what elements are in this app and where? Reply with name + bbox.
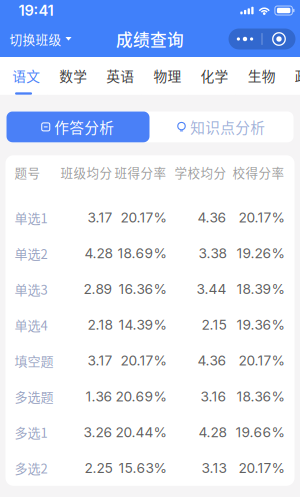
staticText: 20.17%	[238, 352, 284, 369]
button[interactable]: More	[228, 28, 261, 49]
staticText: 16.36%	[118, 281, 166, 297]
staticText: 20.69%	[115, 388, 166, 405]
staticText: 19:41	[18, 2, 53, 19]
staticText: 成绩查询	[116, 27, 184, 51]
staticText: 20.17%	[238, 460, 284, 476]
staticText: 3.16	[200, 388, 226, 405]
staticText: 多选题	[14, 387, 53, 406]
staticText: 多选2	[14, 458, 47, 477]
staticText: 14.39%	[118, 317, 166, 333]
staticText: 作答分析	[54, 116, 114, 137]
staticText: 18.39%	[236, 281, 284, 297]
staticText: 18.36%	[236, 388, 284, 405]
staticText: 3.17	[87, 352, 112, 369]
staticText: 单选3	[14, 280, 47, 298]
staticText: 4.28	[198, 424, 226, 440]
staticText: 切换班级	[9, 30, 61, 48]
staticText: 语文	[12, 66, 40, 85]
button[interactable]: 单选1	[5, 200, 294, 235]
staticText: 20.17%	[120, 209, 166, 226]
staticText: 2.25	[84, 460, 112, 476]
staticText: 2.15	[201, 317, 226, 333]
button[interactable]: 数学	[47, 57, 94, 94]
button[interactable]: 多选题	[5, 378, 294, 414]
staticText: 4.36	[197, 352, 226, 369]
button[interactable]: 单选4	[5, 307, 294, 343]
staticText: 题号	[14, 163, 40, 181]
staticText: 3.17	[87, 209, 112, 226]
button[interactable]: 生物	[235, 57, 283, 94]
staticText: 2.89	[83, 281, 112, 297]
staticText: 4.28	[84, 245, 112, 262]
staticText: 1.36	[85, 388, 112, 405]
button[interactable]: 政治	[283, 57, 300, 94]
staticText: 校得分率	[232, 163, 284, 181]
staticText: 18.69%	[117, 245, 166, 262]
staticText: 多选1	[14, 423, 47, 442]
button[interactable]: 单选2	[5, 235, 294, 271]
button[interactable]: 语文	[0, 57, 47, 94]
staticText: 数学	[59, 66, 87, 85]
staticText: 20.44%	[115, 424, 166, 440]
staticText: 化学	[201, 66, 229, 85]
button[interactable]: 多选2	[5, 450, 294, 486]
staticText: 班级均分	[60, 163, 112, 181]
button[interactable]: 物理	[141, 57, 188, 94]
button[interactable]: 填空题	[5, 343, 294, 378]
staticText: 3.26	[83, 424, 112, 440]
staticText: 政治	[295, 66, 300, 85]
staticText: 知识点分析	[190, 116, 265, 137]
staticText: 班得分率	[114, 163, 166, 181]
button[interactable]: 作答分析	[6, 111, 149, 142]
staticText: 学校均分	[174, 163, 226, 181]
staticText: 单选4	[14, 315, 47, 334]
staticText: 20.17%	[120, 352, 166, 369]
button[interactable]: Close	[262, 28, 295, 49]
staticText: 3.13	[201, 460, 226, 476]
staticText: 4.36	[197, 209, 226, 226]
button[interactable]: 单选3	[5, 271, 294, 307]
staticText: 生物	[248, 66, 276, 85]
staticText: 19.26%	[236, 245, 284, 262]
staticText: 物理	[153, 66, 181, 85]
button[interactable]: 切换班级	[0, 21, 71, 57]
button[interactable]: 多选1	[5, 414, 294, 450]
staticText: 19.66%	[235, 424, 284, 440]
staticText: 15.63%	[118, 460, 166, 476]
button[interactable]: 化学	[188, 57, 235, 94]
staticText: 19.36%	[236, 317, 284, 333]
staticText: 英语	[106, 66, 134, 85]
staticText: 20.17%	[238, 209, 284, 226]
staticText: 填空题	[14, 351, 53, 370]
button[interactable]: 知识点分析	[149, 111, 293, 142]
staticText: 3.44	[196, 281, 226, 297]
staticText: 单选1	[14, 208, 47, 227]
staticText: 单选2	[14, 244, 47, 263]
staticText: 2.18	[87, 317, 112, 333]
button[interactable]: 英语	[94, 57, 141, 94]
staticText: 3.38	[198, 245, 226, 262]
